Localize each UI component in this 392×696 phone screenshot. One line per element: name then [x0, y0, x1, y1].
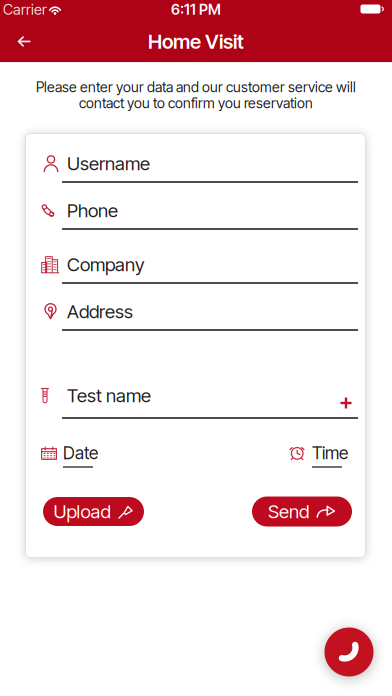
staticText: Please enter your data and our customer … [36, 78, 356, 95]
button[interactable]: Phone [25, 187, 366, 231]
staticText: Company [67, 253, 145, 276]
staticText: Test name [67, 384, 151, 407]
staticText: Carrier [3, 1, 47, 18]
button[interactable]: Username [25, 140, 366, 184]
button[interactable]: Company [25, 241, 366, 285]
button[interactable]: Send [252, 496, 352, 526]
staticText: 6:11 PM [171, 1, 221, 18]
staticText: Address [67, 300, 133, 323]
staticText: Username [67, 152, 150, 175]
staticText: Phone [67, 199, 118, 222]
button[interactable]: Test name [25, 376, 366, 420]
staticText: contact you to confirm you reservation [79, 94, 313, 111]
staticText: Send [268, 500, 309, 523]
button[interactable]: Address [25, 288, 366, 332]
button[interactable]: Call [324, 627, 373, 676]
button[interactable]: Upload [43, 497, 144, 526]
staticText: Home Visit [148, 29, 244, 54]
button[interactable]: Add test [334, 391, 358, 415]
staticText: Time [312, 442, 348, 463]
staticText: Date [63, 442, 98, 463]
button[interactable]: Back [4, 21, 44, 61]
staticText: Upload [53, 500, 110, 523]
button[interactable]: Time [287, 439, 359, 471]
button[interactable]: Date [39, 439, 111, 471]
